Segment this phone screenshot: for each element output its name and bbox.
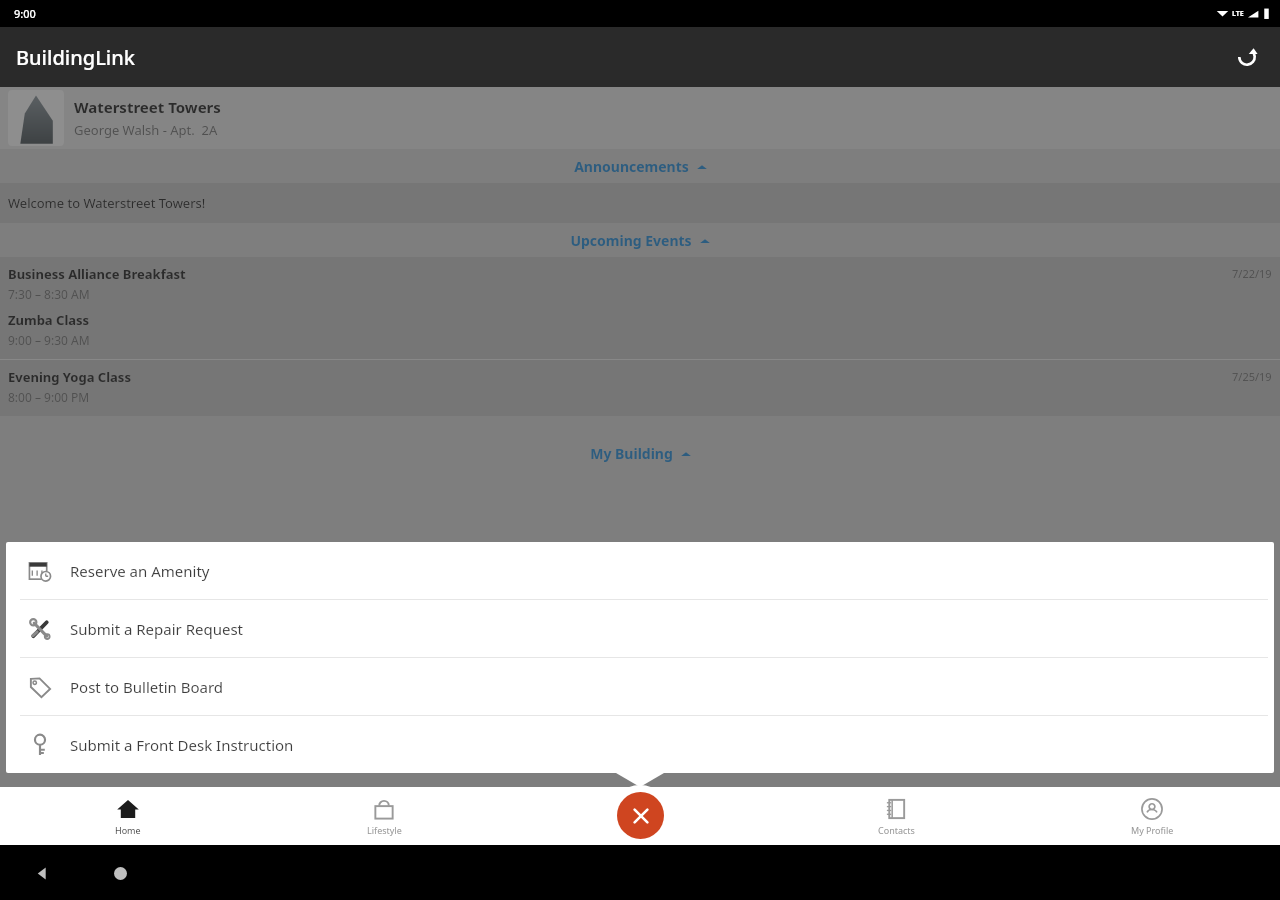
staticText: My Building: [590, 444, 673, 463]
staticText: Evening Yoga Class: [8, 368, 131, 386]
button[interactable]: Welcome to Waterstreet Towers!: [0, 183, 1280, 223]
button[interactable]: Zumba Class: [0, 311, 1280, 348]
staticText: Submit a Repair Request: [70, 619, 243, 639]
button[interactable]: Home: [0, 787, 256, 845]
staticText: Zumba Class: [8, 311, 90, 329]
button[interactable]: My Profile: [1024, 787, 1280, 845]
staticText: My Profile: [1131, 824, 1174, 836]
button[interactable]: Post to Bulletin Board: [6, 658, 1274, 715]
staticText: Home: [115, 824, 141, 836]
button[interactable]: Refresh: [1226, 36, 1268, 78]
staticText: 9:00 – 9:30 AM: [8, 332, 90, 348]
staticText: Welcome to Waterstreet Towers!: [8, 194, 206, 212]
staticText: Waterstreet Towers: [74, 97, 221, 117]
staticText: 8:00 – 9:00 PM: [8, 389, 90, 405]
staticText: BuildingLink: [16, 44, 135, 71]
button[interactable]: Home: [105, 858, 135, 888]
staticText: George Walsh - Apt. 2A: [74, 121, 218, 139]
staticText: 9:00: [14, 6, 36, 21]
button[interactable]: Close menu: [617, 792, 664, 839]
button[interactable]: Waterstreet Towers: [0, 87, 1280, 149]
button[interactable]: Announcements: [0, 149, 1280, 183]
button[interactable]: Lifestyle: [256, 787, 512, 845]
button[interactable]: Evening Yoga Class: [0, 368, 1280, 405]
staticText: Business Alliance Breakfast: [8, 265, 186, 283]
button[interactable]: Submit a Repair Request: [6, 600, 1274, 657]
button[interactable]: Upcoming Events: [0, 223, 1280, 257]
staticText: Post to Bulletin Board: [70, 677, 224, 697]
staticText: Upcoming Events: [570, 231, 692, 250]
staticText: Contacts: [878, 824, 915, 836]
staticText: 7:30 – 8:30 AM: [8, 286, 90, 302]
staticText: 7/25/19: [1232, 369, 1272, 384]
staticText: Submit a Front Desk Instruction: [70, 735, 294, 755]
staticText: Announcements: [574, 157, 689, 176]
button[interactable]: Reserve an Amenity: [6, 542, 1274, 599]
staticText: Lifestyle: [367, 824, 402, 836]
staticText: Reserve an Amenity: [70, 561, 210, 581]
button[interactable]: My Building: [0, 436, 1280, 470]
staticText: 7/22/19: [1232, 266, 1272, 281]
staticText: LTE: [1232, 9, 1244, 19]
button[interactable]: Business Alliance Breakfast: [0, 265, 1280, 302]
button[interactable]: Submit a Front Desk Instruction: [6, 716, 1274, 773]
button[interactable]: Contacts: [768, 787, 1024, 845]
button[interactable]: Back: [26, 858, 56, 888]
